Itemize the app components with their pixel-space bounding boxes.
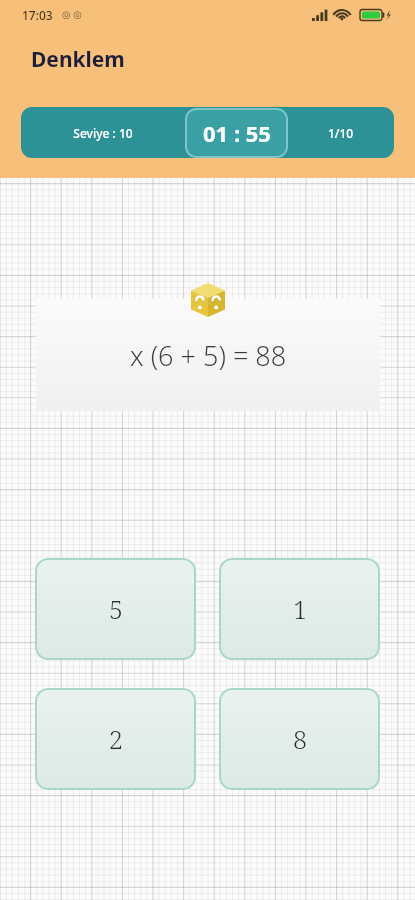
button[interactable]: 1 — [219, 558, 380, 660]
button[interactable]: 2 — [35, 688, 196, 790]
staticText: ◎ ◎ — [62, 7, 83, 21]
staticText: 17:03 — [22, 7, 53, 23]
button[interactable]: 8 — [219, 688, 380, 790]
staticText: 5 — [109, 592, 123, 626]
staticText: x (6 + 5) = 88 — [130, 337, 287, 374]
staticText: 2 — [109, 722, 123, 756]
staticText: 1 — [293, 592, 307, 626]
staticText: 01 : 55 — [203, 118, 271, 148]
staticText: 8 — [293, 722, 307, 756]
staticText: Denklem — [31, 45, 125, 74]
button[interactable]: Hint — [187, 279, 229, 321]
staticText: 1/10 — [328, 125, 354, 141]
button[interactable]: 5 — [35, 558, 196, 660]
staticText: Seviye : 10 — [73, 125, 133, 141]
